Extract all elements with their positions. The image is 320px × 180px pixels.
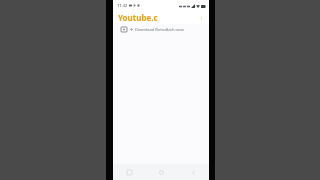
button[interactable]: Back [187, 166, 199, 178]
button[interactable]: Youtube.com/Retroarts [113, 11, 209, 24]
staticText: Youtube.com/Retroarts [118, 12, 158, 23]
button[interactable]: Recent apps [123, 166, 135, 178]
staticText: Download RetroArch now [135, 27, 184, 32]
staticText: 11:32 [117, 3, 128, 8]
button[interactable]: Home [155, 166, 167, 178]
button[interactable]: Site icon [113, 24, 209, 35]
button[interactable]: More options [198, 15, 204, 21]
other: Site icon [121, 27, 127, 32]
